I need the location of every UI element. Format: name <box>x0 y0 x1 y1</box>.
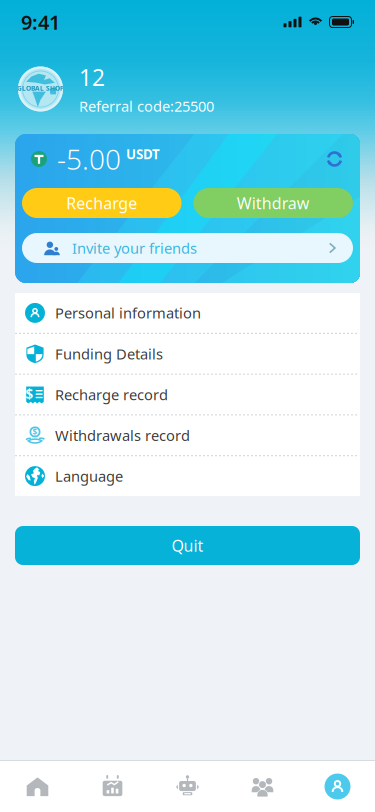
button[interactable]: Team <box>225 761 300 812</box>
button[interactable]: Robot <box>150 761 225 812</box>
button[interactable]: Quit <box>15 526 360 565</box>
button[interactable]: Home <box>0 761 75 812</box>
button[interactable]: Refresh balance <box>325 149 344 168</box>
staticText: 12 <box>79 62 105 92</box>
staticText: GLOBAL SHOP <box>17 84 64 93</box>
staticText: Referral code:25500 <box>79 96 214 116</box>
button[interactable]: Invite your friends <box>22 233 353 263</box>
staticText: Language <box>55 466 123 486</box>
button[interactable]: Profile <box>300 761 375 812</box>
button[interactable]: Withdraw <box>193 188 353 218</box>
staticText: Invite your friends <box>72 238 197 258</box>
staticText: $ <box>26 385 34 403</box>
staticText: Personal information <box>55 303 201 323</box>
button[interactable]: Statistics <box>75 761 150 812</box>
staticText: -5.00 <box>57 140 121 178</box>
button[interactable]: $ <box>15 375 360 414</box>
button[interactable]: Funding Details <box>15 334 360 374</box>
button[interactable]: Language <box>15 456 360 496</box>
staticText: Quit <box>171 535 203 556</box>
staticText: Funding Details <box>55 344 163 363</box>
staticText: 9:41 <box>21 9 60 35</box>
button[interactable]: Personal information <box>15 293 360 333</box>
staticText: USDT <box>126 145 160 163</box>
staticText: Withdraw <box>237 192 310 214</box>
staticText: Withdrawals record <box>55 426 190 445</box>
button[interactable]: Recharge <box>22 188 181 218</box>
staticText: $ <box>32 427 37 437</box>
staticText: Recharge <box>66 192 137 214</box>
button[interactable]: $ <box>15 415 360 455</box>
staticText: Recharge record <box>55 385 168 404</box>
